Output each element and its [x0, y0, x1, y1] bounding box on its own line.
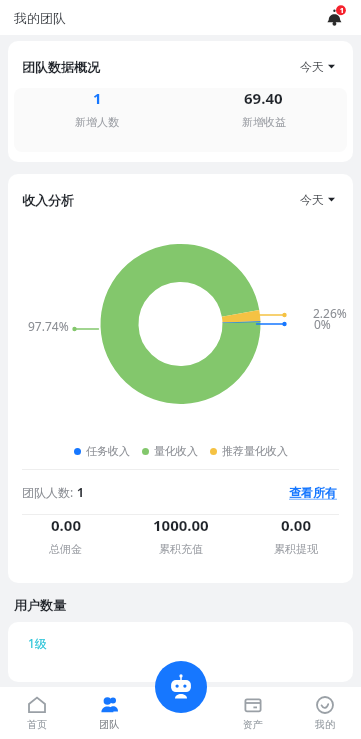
button[interactable]: 查看所有	[287, 483, 339, 502]
staticText: 0.00	[51, 515, 81, 535]
staticText: 我的	[315, 718, 335, 731]
staticText: 累积充值	[159, 542, 203, 556]
staticText: 69.40	[244, 88, 283, 108]
staticText: 0.00	[281, 515, 311, 535]
staticText: 资产	[243, 718, 263, 731]
staticText: 团队	[99, 718, 119, 731]
staticText: 今天	[300, 59, 324, 74]
button[interactable]: 1000.00	[123, 515, 238, 556]
staticText: 1000.00	[153, 515, 209, 535]
button[interactable]: 69.40	[180, 88, 347, 129]
staticText: 任务收入	[86, 444, 130, 458]
staticText: 累积提现	[274, 542, 318, 556]
button[interactable]: 团队	[73, 695, 145, 731]
staticText: 2.26%	[313, 305, 347, 321]
button[interactable]: 今天	[296, 188, 339, 211]
staticText: 97.74%	[28, 318, 69, 334]
staticText: 量化收入	[154, 444, 198, 458]
button[interactable]: 我的	[289, 695, 361, 731]
staticText: 查看所有	[289, 485, 337, 500]
staticText: 0%	[314, 316, 331, 332]
staticText: 今天	[300, 192, 324, 207]
staticText: 总佣金	[49, 542, 82, 556]
staticText: 我的团队	[14, 10, 66, 26]
button[interactable]: 0.00	[8, 515, 123, 556]
staticText: 1	[340, 6, 345, 16]
staticText: 团队人数:	[22, 484, 77, 500]
button[interactable]: AI 助手	[155, 661, 207, 713]
button[interactable]: 1	[14, 88, 180, 129]
staticText: 用户数量	[14, 597, 66, 613]
staticText: 1级	[28, 635, 47, 651]
button[interactable]: 0.00	[238, 515, 353, 556]
button[interactable]: 今天	[296, 55, 339, 78]
button[interactable]: 通知	[321, 3, 351, 33]
staticText: 首页	[27, 718, 47, 731]
staticText: 推荐量化收入	[222, 444, 288, 458]
staticText: 团队数据概况	[22, 59, 100, 75]
staticText: 收入分析	[22, 192, 74, 208]
button[interactable]: 首页	[0, 695, 73, 731]
staticText: 新增收益	[242, 115, 286, 129]
staticText: 1	[93, 88, 102, 108]
staticText: 新增人数	[75, 115, 119, 129]
staticText: 1	[77, 484, 84, 500]
button[interactable]: 资产	[217, 695, 289, 731]
